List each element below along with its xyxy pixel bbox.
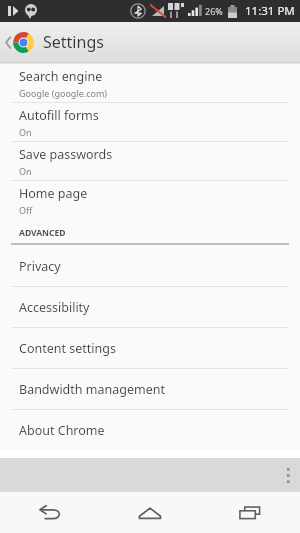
- staticText: Save passwords: [19, 146, 113, 163]
- button[interactable]: Save passwords: [0, 142, 300, 180]
- staticText: Bandwidth management: [19, 381, 165, 398]
- staticText: ADVANCED: [19, 227, 66, 239]
- button[interactable]: Autofill forms: [0, 103, 300, 141]
- staticText: Google (google.com): [19, 87, 108, 99]
- staticText: On: [19, 165, 32, 177]
- staticText: 11:31 PM: [245, 3, 295, 19]
- button[interactable]: Home: [118, 492, 182, 533]
- staticText: On: [19, 126, 32, 138]
- staticText: Search engine: [19, 68, 103, 85]
- button[interactable]: Bandwidth management: [0, 369, 300, 409]
- button[interactable]: Search engine: [0, 64, 300, 102]
- button[interactable]: Home page: [0, 181, 300, 219]
- button[interactable]: Privacy: [0, 246, 300, 286]
- staticText: About Chrome: [19, 422, 105, 439]
- button[interactable]: Recent apps: [218, 492, 282, 533]
- staticText: Accessibility: [19, 299, 90, 316]
- staticText: Settings: [43, 31, 104, 53]
- staticText: Off: [19, 204, 33, 216]
- staticText: Content settings: [19, 340, 116, 357]
- button[interactable]: Back: [18, 492, 82, 533]
- button[interactable]: Content settings: [0, 328, 300, 368]
- button[interactable]: About Chrome: [0, 410, 300, 450]
- button[interactable]: Accessibility: [0, 287, 300, 327]
- staticText: Autofill forms: [19, 107, 99, 124]
- staticText: Home page: [19, 185, 88, 202]
- staticText: Privacy: [19, 258, 61, 275]
- button[interactable]: Navigate up: [0, 22, 300, 62]
- staticText: 26%: [205, 5, 223, 17]
- button[interactable]: More options: [276, 458, 300, 492]
